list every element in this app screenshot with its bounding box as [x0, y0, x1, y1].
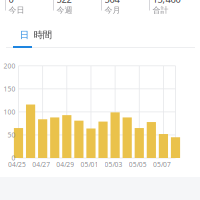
staticText: 13,460: [152, 0, 180, 5]
staticText: 04/29: [56, 160, 74, 169]
staticText: 04/25: [8, 160, 26, 169]
staticText: 0: [11, 154, 15, 162]
staticText: 05/07: [153, 160, 171, 169]
staticText: 05/05: [129, 160, 147, 169]
staticText: 05/01: [80, 160, 98, 169]
staticText: 今週: [56, 5, 72, 15]
button[interactable]: 時間: [30, 28, 56, 42]
staticText: 150: [3, 84, 15, 93]
staticText: 04/27: [32, 160, 50, 169]
staticText: 50: [7, 130, 15, 139]
button[interactable]: 日: [14, 28, 34, 42]
staticText: 今日: [8, 5, 24, 15]
staticText: 時間: [34, 29, 52, 41]
staticText: 304: [104, 0, 119, 5]
staticText: 0: [8, 0, 13, 5]
staticText: 05/03: [105, 160, 123, 169]
staticText: 322: [56, 0, 71, 5]
staticText: 100: [3, 107, 15, 116]
staticText: 200: [3, 61, 15, 70]
staticText: 日: [20, 29, 29, 41]
staticText: 今月: [104, 5, 120, 15]
staticText: 合計: [152, 5, 168, 15]
